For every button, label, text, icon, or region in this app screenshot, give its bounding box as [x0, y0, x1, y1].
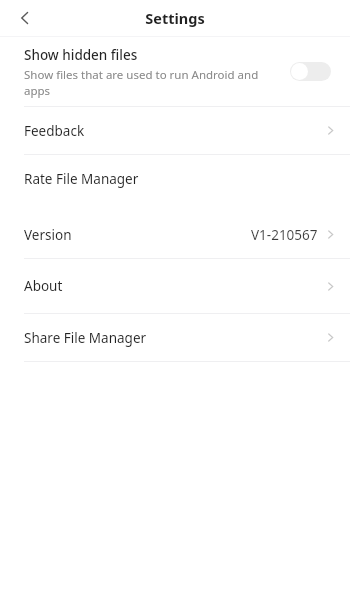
- staticText: Show files that are used to run Android …: [24, 67, 282, 98]
- button[interactable]: About: [0, 259, 350, 313]
- staticText: Rate File Manager: [24, 170, 139, 188]
- staticText: Settings: [145, 8, 205, 28]
- button[interactable]: Show hidden files: [0, 37, 350, 106]
- button[interactable]: Back: [10, 3, 40, 33]
- staticText: Show hidden files: [24, 46, 138, 64]
- staticText: Version: [24, 226, 72, 244]
- button[interactable]: Show hidden files toggle: [290, 62, 331, 81]
- button[interactable]: Version: [0, 211, 350, 258]
- button[interactable]: Rate File Manager: [0, 155, 350, 202]
- button[interactable]: Feedback: [0, 107, 350, 154]
- staticText: Share File Manager: [24, 329, 147, 347]
- button[interactable]: Share File Manager: [0, 314, 350, 361]
- staticText: Feedback: [24, 122, 85, 140]
- staticText: About: [24, 277, 63, 295]
- staticText: V1-210567: [251, 226, 318, 244]
